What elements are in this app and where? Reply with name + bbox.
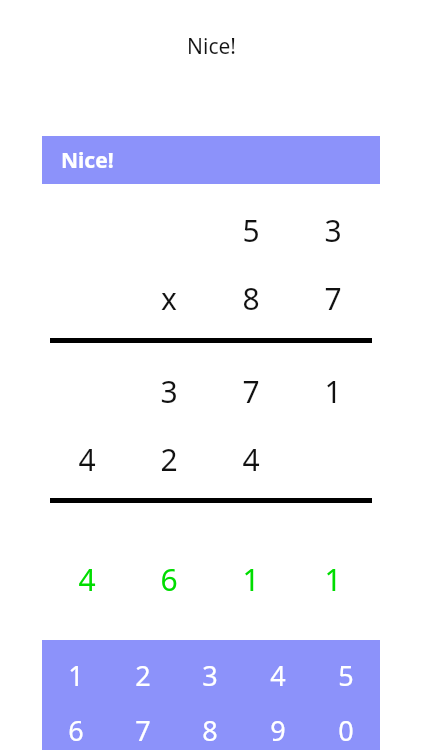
button[interactable]: 7 [109, 710, 176, 750]
button[interactable]: 1 [42, 640, 109, 710]
button[interactable]: 6 [42, 710, 109, 750]
staticText: 5 [338, 657, 354, 694]
staticText: 7 [242, 371, 260, 412]
staticText: 0 [338, 712, 354, 749]
button[interactable]: 3 [176, 640, 244, 710]
staticText: 1 [324, 371, 342, 412]
staticText: 4 [78, 439, 96, 480]
button[interactable]: 5 [312, 640, 380, 710]
staticText: 9 [270, 712, 286, 749]
button[interactable]: 8 [176, 710, 244, 750]
staticText: 6 [68, 712, 84, 749]
staticText: 3 [202, 657, 218, 694]
staticText: 7 [324, 278, 342, 319]
staticText: 7 [135, 712, 151, 749]
staticText: 3 [324, 210, 342, 251]
staticText: 5 [242, 210, 260, 251]
staticText: 3 [160, 371, 178, 412]
staticText: 4 [270, 657, 286, 694]
staticText: 1 [242, 559, 260, 600]
staticText: 1 [68, 657, 84, 694]
staticText: 2 [135, 657, 151, 694]
button[interactable]: 0 [312, 710, 380, 750]
staticText: Nice! [61, 146, 114, 175]
staticText: 6 [160, 559, 178, 600]
staticText: 8 [202, 712, 218, 749]
staticText: 1 [324, 559, 342, 600]
staticText: 2 [160, 439, 178, 480]
button[interactable]: 4 [244, 640, 312, 710]
button[interactable]: 2 [109, 640, 176, 710]
button[interactable]: 9 [244, 710, 312, 750]
staticText: 4 [78, 559, 96, 600]
button[interactable]: Nice! [42, 136, 380, 184]
staticText: Nice! [187, 32, 236, 61]
staticText: 4 [242, 439, 260, 480]
staticText: 8 [242, 278, 260, 319]
staticText: x [161, 278, 177, 319]
